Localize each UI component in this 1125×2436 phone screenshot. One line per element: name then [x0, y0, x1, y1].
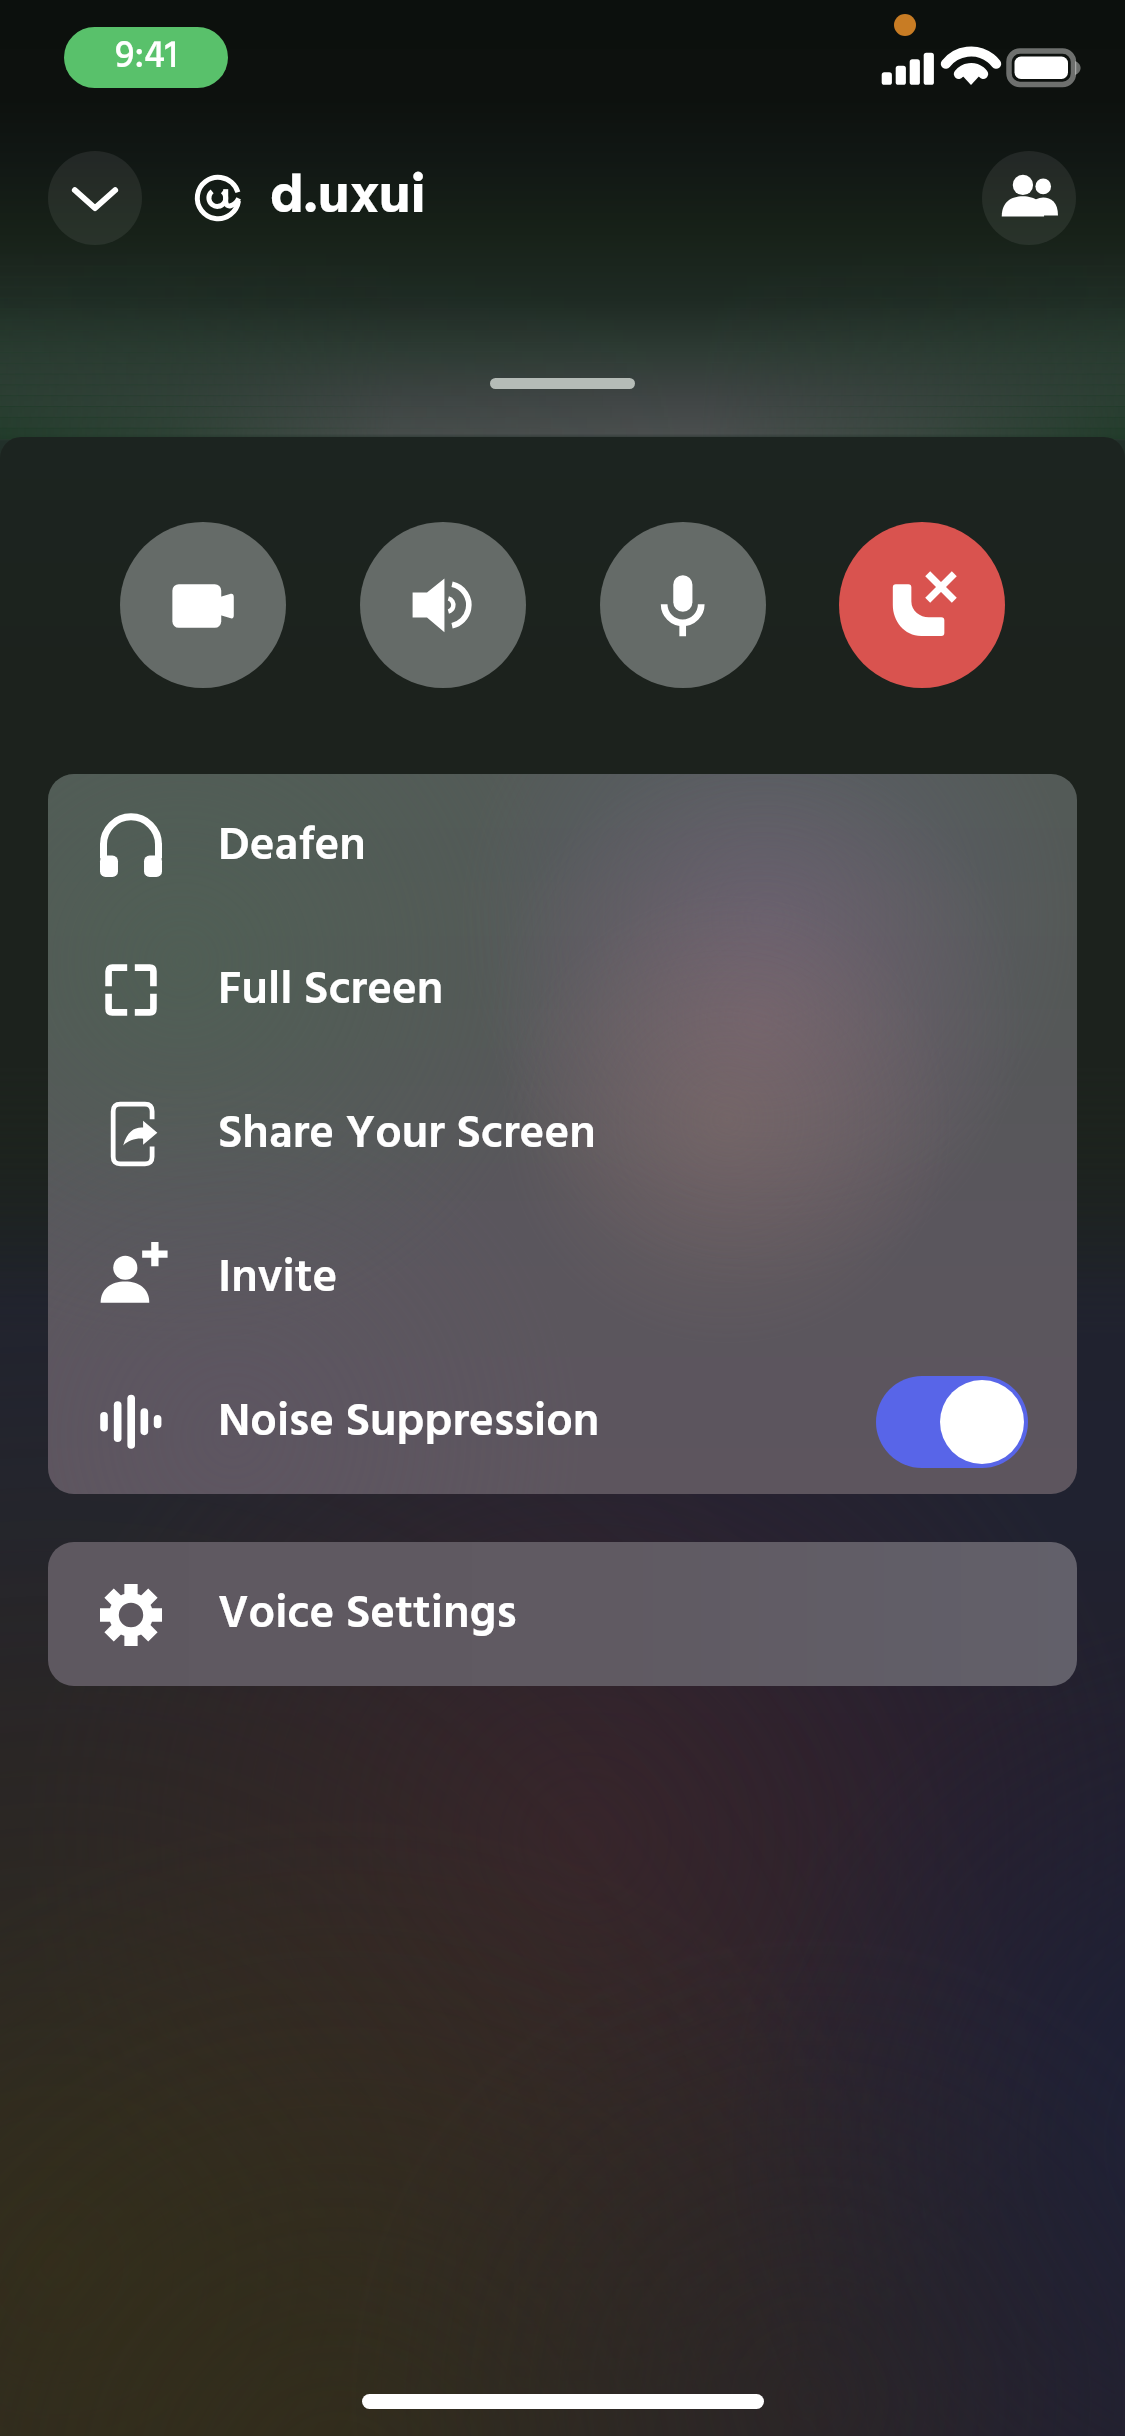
staticText: d.uxui [270, 154, 426, 242]
button[interactable]: Speaker [360, 522, 526, 688]
staticText: Deafen [218, 809, 366, 884]
button[interactable]: Video [120, 522, 286, 688]
staticText: Invite [218, 1241, 338, 1316]
button[interactable]: Collapse [48, 151, 142, 245]
button[interactable]: Voice Settings [48, 1542, 1077, 1686]
button[interactable]: Share Your Screen [48, 1062, 1077, 1206]
button[interactable]: Deafen [48, 774, 1077, 918]
button[interactable]: End call [839, 522, 1005, 688]
button[interactable]: Invite [48, 1206, 1077, 1350]
button[interactable]: Full Screen [48, 918, 1077, 1062]
staticText: Voice Settings [218, 1577, 517, 1652]
staticText: Noise Suppression [218, 1385, 600, 1460]
button[interactable]: Noise Suppression [48, 1350, 1077, 1494]
staticText: 9:41 [115, 27, 178, 88]
staticText: Share Your Screen [218, 1097, 596, 1172]
staticText: Full Screen [218, 953, 444, 1028]
button[interactable]: Mute [600, 522, 766, 688]
button[interactable]: Members [982, 151, 1076, 245]
